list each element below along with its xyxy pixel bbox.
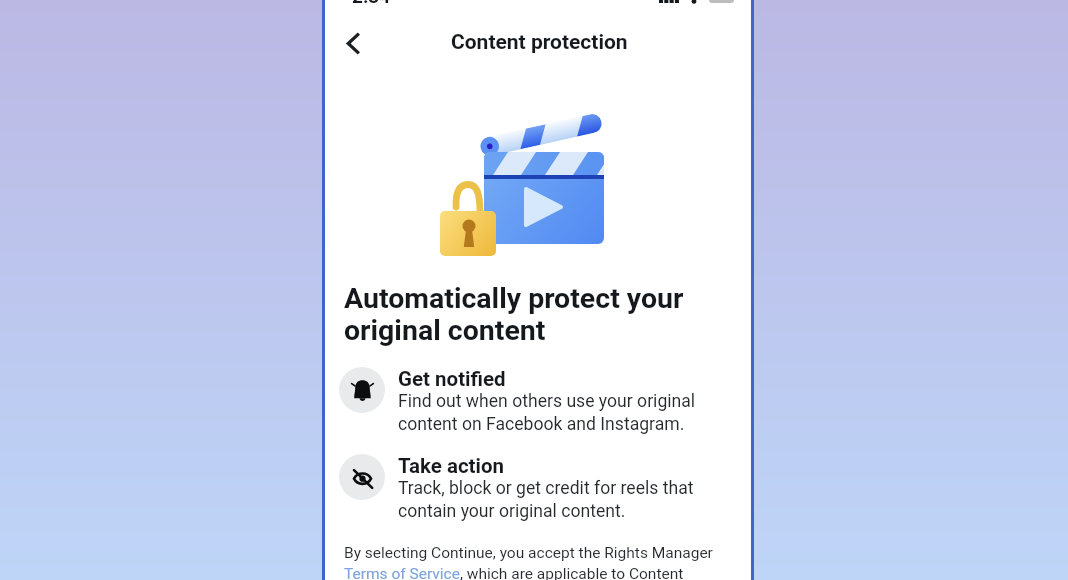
staticText: Track, block or get credit for reels tha… <box>398 478 694 522</box>
staticText: By selecting Continue, you accept the Ri… <box>344 544 713 580</box>
staticText: Take action <box>398 454 505 478</box>
button[interactable]: Take action <box>339 454 739 522</box>
staticText: Automatically protect your original cont… <box>344 282 684 346</box>
staticText: Content protection <box>451 30 628 55</box>
staticText: Get notified <box>398 367 506 391</box>
staticText: Find out when others use your original c… <box>398 391 696 435</box>
button[interactable]: Back <box>331 21 375 65</box>
button[interactable]: Get notified <box>339 367 739 435</box>
staticText: 2:34 <box>352 0 391 7</box>
